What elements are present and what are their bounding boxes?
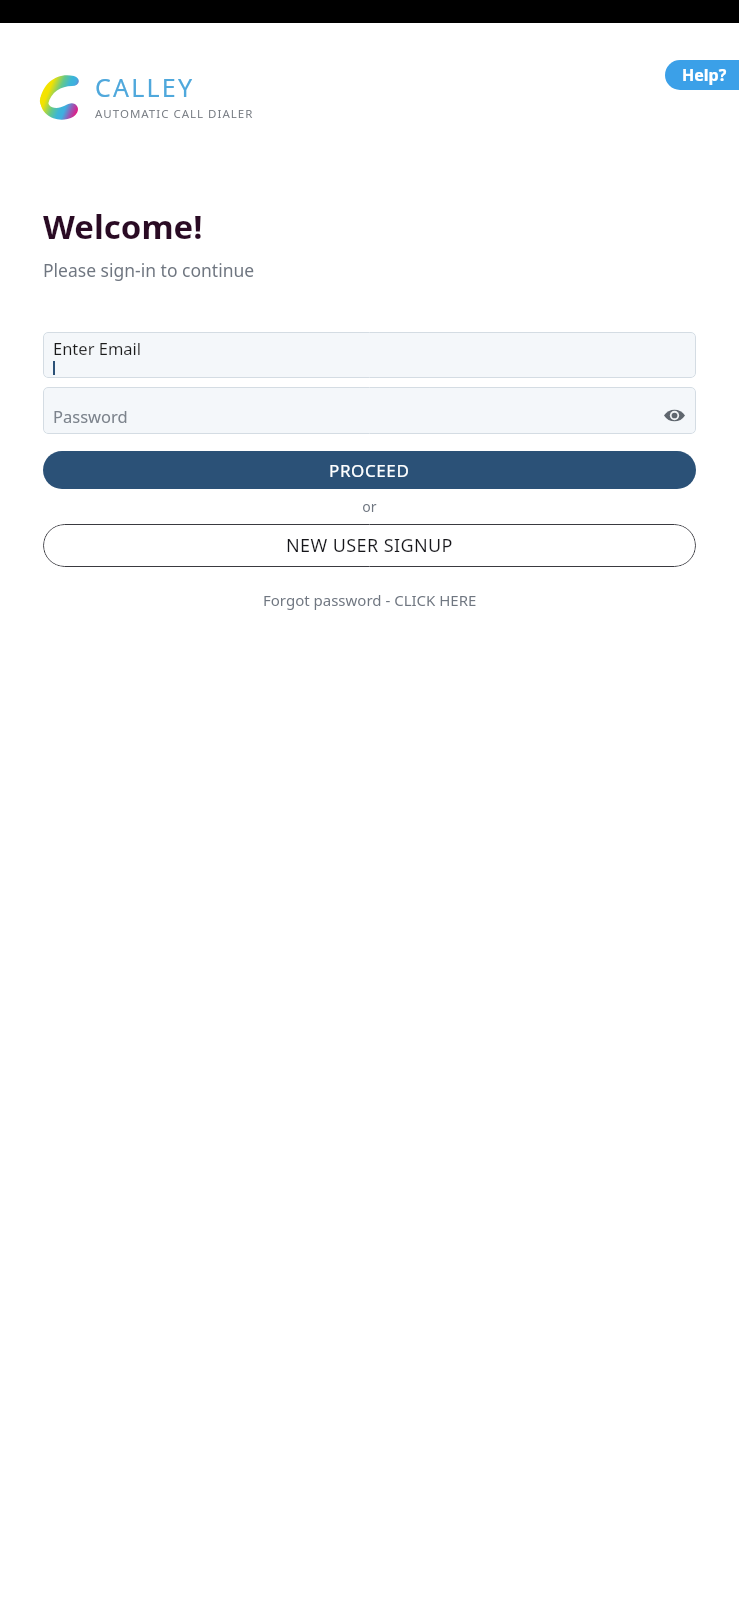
button[interactable]: Help? — [665, 60, 739, 90]
staticText: Enter Email — [53, 337, 142, 359]
button[interactable]: Show password — [661, 402, 687, 428]
button[interactable]: PROCEED — [43, 451, 696, 489]
staticText: Please sign-in to continue — [43, 258, 255, 282]
staticText: NEW USER SIGNUP — [286, 533, 453, 558]
button[interactable]: Password — [43, 387, 696, 434]
staticText: or — [43, 497, 696, 516]
button[interactable]: Forgot password - CLICK HERE — [43, 590, 696, 610]
button[interactable]: CALLEY — [38, 70, 254, 122]
staticText: Forgot password - CLICK HERE — [263, 590, 477, 610]
staticText: Welcome! — [43, 204, 203, 249]
staticText: Help? — [682, 64, 727, 86]
button[interactable]: NEW USER SIGNUP — [43, 524, 696, 567]
staticText: CALLEY — [95, 70, 195, 104]
staticText: PROCEED — [329, 459, 410, 482]
staticText: AUTOMATIC CALL DIALER — [95, 106, 254, 122]
staticText: Password — [53, 405, 128, 427]
button[interactable]: Enter Email — [43, 332, 696, 378]
